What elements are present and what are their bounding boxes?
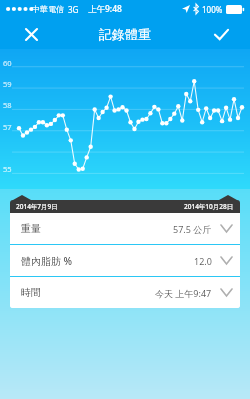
button[interactable]: Cancel	[20, 23, 42, 45]
staticText: 2014年7月9日	[16, 202, 58, 211]
staticText: 今天 上午9:47	[155, 287, 212, 299]
button[interactable]: 2014年7月9日	[10, 200, 240, 213]
staticText: 60	[3, 58, 12, 68]
button[interactable]: 時間	[10, 277, 240, 308]
staticText: 12.0	[194, 255, 212, 267]
staticText: 57	[3, 122, 12, 132]
staticText: 時間	[21, 286, 41, 299]
staticText: 3G	[68, 4, 79, 15]
staticText: 中華電信	[32, 4, 64, 14]
button[interactable]: Save	[210, 23, 232, 45]
button[interactable]: 體內脂肪 %	[10, 245, 240, 276]
staticText: 58	[3, 100, 12, 110]
staticText: 上午9:48	[88, 3, 122, 15]
staticText: 重量	[21, 222, 41, 235]
staticText: 體內脂肪 %	[21, 254, 73, 268]
staticText: 2014年10月28日	[184, 202, 234, 211]
staticText: 57.5 公斤	[173, 223, 212, 235]
staticText: 55	[3, 164, 12, 174]
staticText: 記錄體重	[99, 26, 151, 42]
button[interactable]: 重量	[10, 213, 240, 244]
staticText: 100%	[202, 4, 223, 15]
staticText: 59	[3, 79, 12, 89]
